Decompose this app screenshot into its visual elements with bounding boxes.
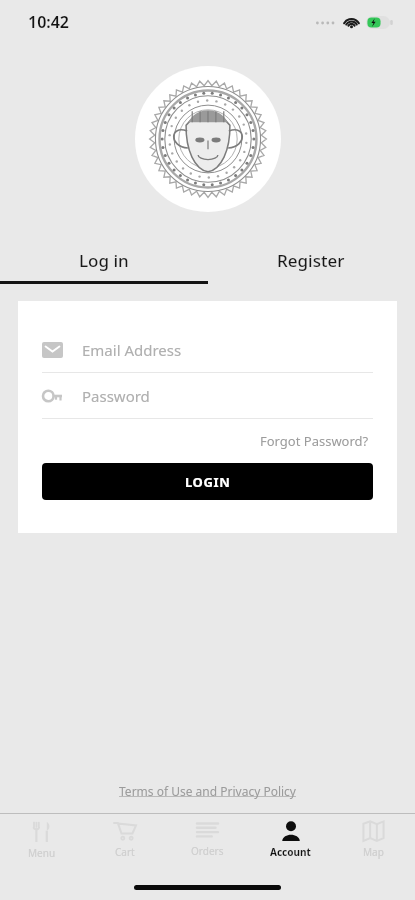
staticText: Orders [191, 844, 224, 858]
button[interactable]: Forgot Password? [256, 428, 373, 454]
button[interactable]: Register [207, 236, 415, 284]
button[interactable]: Terms of Use and Privacy Policy [115, 779, 300, 803]
other: Cart [114, 821, 136, 841]
staticText: Email Address [82, 340, 182, 360]
button[interactable]: Map [332, 814, 415, 866]
staticText: 10:42 [28, 11, 70, 33]
other: Map [363, 821, 384, 841]
button[interactable]: Orders [166, 814, 249, 866]
other: Password [42, 388, 63, 404]
staticText: Register [277, 249, 345, 272]
other: Account [281, 821, 301, 841]
button[interactable]: Menu [0, 814, 83, 866]
button[interactable]: Account [249, 814, 332, 866]
other: Email [42, 342, 63, 358]
button[interactable]: Log in [0, 236, 207, 284]
staticText: Cart [115, 845, 135, 859]
staticText: Log in [79, 249, 129, 272]
staticText: LOGIN [185, 473, 231, 491]
staticText: Password [82, 386, 150, 406]
staticText: Terms of Use and Privacy Policy [119, 783, 296, 799]
staticText: Account [270, 845, 311, 859]
other: Menu [32, 821, 52, 842]
button[interactable]: Cart [83, 814, 166, 866]
staticText: Map [363, 845, 384, 859]
staticText: Menu [28, 846, 56, 860]
staticText: Forgot Password? [260, 432, 369, 450]
button[interactable]: Email [42, 327, 373, 372]
other: Orders [197, 822, 218, 840]
button[interactable]: LOGIN [42, 463, 373, 500]
button[interactable]: Password [42, 373, 373, 418]
